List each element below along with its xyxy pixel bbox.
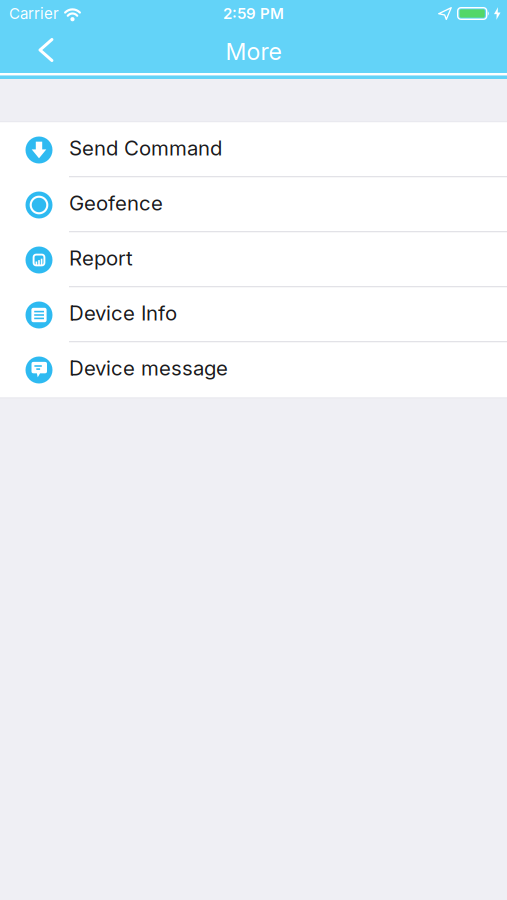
staticText: Device Info [69, 301, 177, 326]
button[interactable]: Report [0, 232, 507, 287]
button[interactable] [0, 27, 61, 73]
staticText: Send Command [69, 136, 222, 161]
staticText: More [225, 37, 281, 66]
staticText: Device message [69, 356, 228, 381]
button[interactable]: Device message [0, 342, 507, 397]
staticText: Report [69, 246, 133, 271]
staticText: Carrier [9, 4, 59, 23]
button[interactable]: Geofence [0, 177, 507, 232]
button[interactable]: Device Info [0, 287, 507, 342]
staticText: 2:59 PM [223, 4, 284, 23]
staticText: Geofence [69, 191, 163, 216]
button[interactable]: Send Command [0, 122, 507, 177]
